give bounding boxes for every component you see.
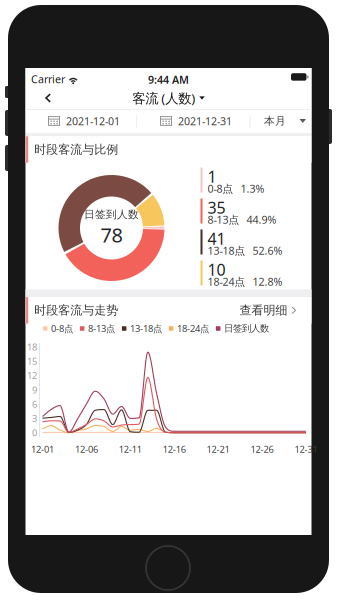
button[interactable]: Back — [32, 86, 64, 109]
staticText: 1 — [207, 166, 216, 187]
staticText: 12-21 — [207, 443, 230, 455]
staticText: Carrier — [31, 72, 65, 86]
staticText: 8-13点 — [88, 322, 115, 335]
staticText: 18-24点 — [207, 274, 245, 289]
staticText: 6 — [32, 398, 37, 410]
staticText: 13-18点 — [130, 322, 162, 335]
staticText: 9 — [32, 384, 37, 396]
staticText: 12-11 — [119, 443, 142, 455]
staticText: 2021-12-01 — [66, 114, 120, 128]
staticText: 52.6% — [252, 243, 282, 258]
staticText: 1.3% — [240, 181, 264, 196]
staticText: 0 — [32, 426, 37, 439]
staticText: 12-31 — [294, 443, 317, 455]
staticText: 时段客流与走势 — [34, 303, 118, 318]
staticText: 12-26 — [250, 443, 273, 455]
staticText: 0-8点 — [51, 322, 73, 335]
button[interactable]: 2021-12-01 — [28, 109, 139, 133]
staticText: 35 — [207, 197, 225, 218]
staticText: 日签到人数 — [84, 208, 139, 221]
button[interactable]: 2021-12-31 — [140, 109, 251, 133]
staticText: 10 — [207, 259, 225, 280]
staticText: 15 — [27, 355, 37, 367]
staticText: 9:44 AM — [148, 72, 189, 87]
staticText: 18 — [27, 341, 37, 353]
staticText: 2021-12-31 — [178, 114, 232, 128]
button[interactable]: 查看明细 — [240, 297, 311, 323]
staticText: 日签到人数 — [224, 323, 269, 334]
staticText: 时段客流与比例 — [34, 142, 118, 157]
button[interactable]: 本月 — [249, 109, 311, 133]
staticText: 78 — [100, 221, 122, 248]
staticText: 本月 — [264, 114, 286, 127]
staticText: 18-24点 — [177, 322, 209, 335]
button[interactable]: 客流 (人数) — [132, 86, 205, 109]
staticText: 13-18点 — [207, 243, 245, 258]
staticText: 12 — [27, 369, 37, 382]
staticText: 12-06 — [75, 443, 98, 455]
staticText: 8-13点 — [207, 212, 239, 227]
staticText: 客流 (人数) — [132, 89, 195, 107]
staticText: 12-16 — [163, 443, 186, 455]
staticText: 41 — [207, 228, 225, 249]
staticText: 3 — [32, 412, 37, 425]
staticText: 12.8% — [252, 274, 282, 289]
staticText: 查看明细 — [240, 303, 288, 318]
staticText: 44.9% — [246, 212, 276, 227]
staticText: 0-8点 — [207, 181, 233, 196]
staticText: 12-01 — [31, 443, 54, 455]
